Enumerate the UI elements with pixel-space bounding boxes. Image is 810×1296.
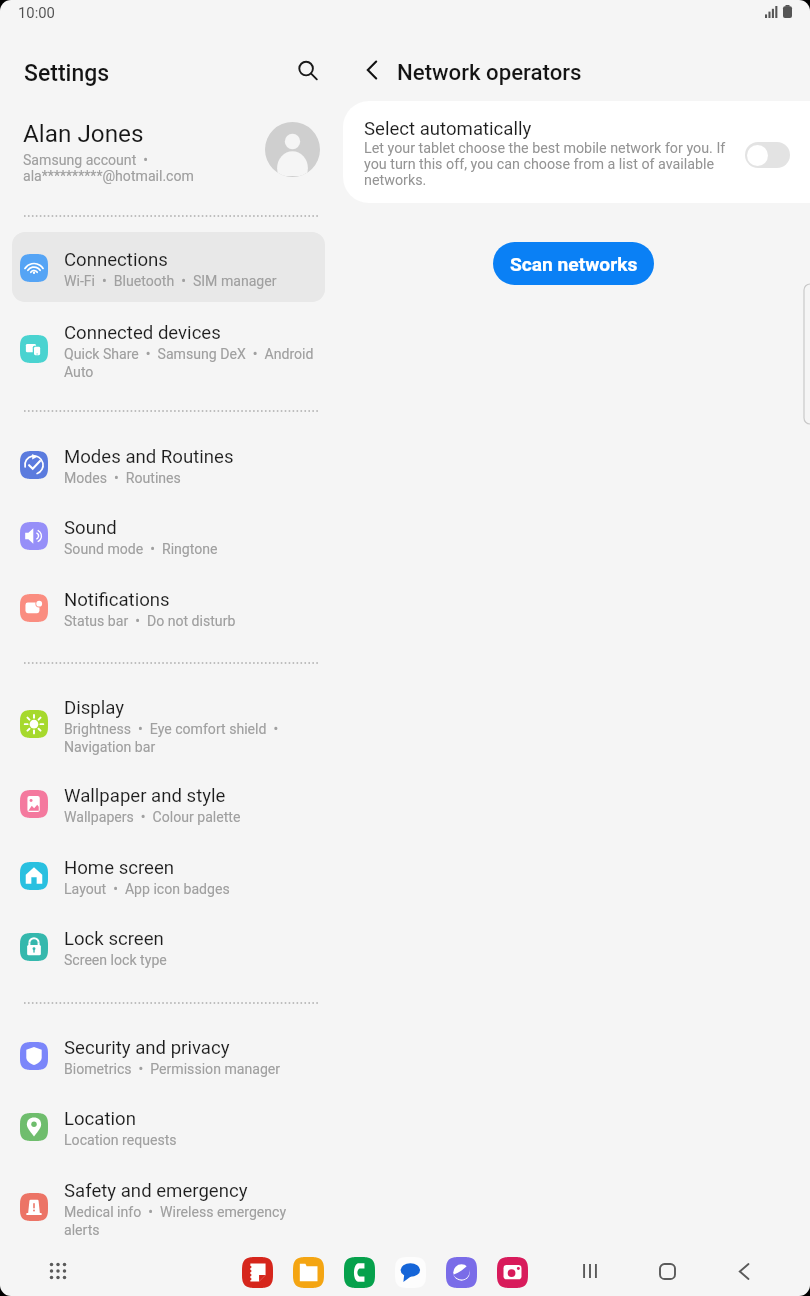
button[interactable]: Location — [12, 1091, 325, 1161]
staticText: Layout • App icon badges — [64, 880, 230, 898]
button[interactable]: Safety and emergency — [12, 1163, 325, 1250]
staticText: Brightness • Eye comfort shield • Naviga… — [64, 720, 279, 756]
button[interactable]: Sound — [12, 500, 325, 570]
staticText: Modes and Routines — [64, 445, 234, 468]
button[interactable]: Back — [728, 1255, 760, 1287]
staticText: Connected devices — [64, 321, 221, 344]
staticText: Lock screen — [64, 927, 164, 950]
staticText: Home screen — [64, 856, 175, 879]
staticText: Medical info • Wireless emergency alerts — [64, 1203, 287, 1239]
staticText: Wallpaper and style — [64, 784, 226, 807]
button[interactable]: Display — [12, 680, 325, 767]
staticText: Biometrics • Permission manager — [64, 1060, 281, 1078]
staticText: Modes • Routines — [64, 469, 181, 487]
staticText: Status bar • Do not disturb — [64, 612, 236, 630]
staticText: Display — [64, 696, 125, 719]
button[interactable]: files — [293, 1257, 324, 1288]
button[interactable]: Select automatically — [745, 142, 790, 168]
button[interactable]: Notifications — [12, 572, 325, 642]
staticText: Security and privacy — [64, 1036, 230, 1059]
button[interactable]: Security and privacy — [12, 1020, 325, 1090]
staticText: Location requests — [64, 1131, 177, 1149]
staticText: Wi-Fi • Bluetooth • SIM manager — [64, 272, 277, 290]
button[interactable]: Lock screen — [12, 911, 325, 981]
staticText: Location — [64, 1107, 136, 1130]
button[interactable]: Select automatically — [343, 101, 810, 203]
button[interactable]: Wallpaper and style — [12, 768, 325, 838]
button[interactable]: Scan networks — [493, 242, 654, 285]
button[interactable]: Home — [651, 1255, 683, 1287]
button[interactable]: msg — [395, 1257, 426, 1288]
button[interactable]: Modes and Routines — [12, 429, 325, 499]
staticText: 10:00 — [18, 3, 55, 22]
staticText: Sound mode • Ringtone — [64, 540, 218, 558]
staticText: Let your tablet choose the best mobile n… — [364, 140, 726, 188]
staticText: Alan Jones — [23, 118, 144, 148]
button[interactable]: notes — [242, 1257, 273, 1288]
staticText: Samsung account • ala**********@hotmail.… — [23, 152, 194, 184]
staticText: Select automatically — [364, 117, 532, 140]
staticText: Connections — [64, 248, 168, 271]
staticText: Quick Share • Samsung DeX • Android Auto — [64, 345, 314, 381]
button[interactable]: Search — [290, 53, 324, 87]
button[interactable]: camera — [497, 1257, 528, 1288]
button[interactable]: Home screen — [12, 840, 325, 910]
staticText: Notifications — [64, 588, 170, 611]
button[interactable]: internet — [446, 1257, 477, 1288]
staticText: Scan networks — [510, 252, 638, 276]
button[interactable]: Back — [355, 53, 389, 87]
staticText: Wallpapers • Colour palette — [64, 808, 241, 826]
staticText: Settings — [24, 58, 110, 87]
button[interactable]: Connections — [12, 232, 325, 302]
button[interactable]: Recents — [574, 1255, 606, 1287]
staticText: Screen lock type — [64, 951, 167, 969]
button[interactable]: Alan Jones — [0, 104, 340, 192]
button[interactable]: Connected devices — [12, 305, 325, 392]
staticText: Network operators — [397, 58, 582, 86]
button[interactable]: phone — [344, 1257, 375, 1288]
staticText: Sound — [64, 516, 117, 539]
staticText: Safety and emergency — [64, 1179, 248, 1202]
button[interactable]: Apps — [42, 1255, 74, 1287]
